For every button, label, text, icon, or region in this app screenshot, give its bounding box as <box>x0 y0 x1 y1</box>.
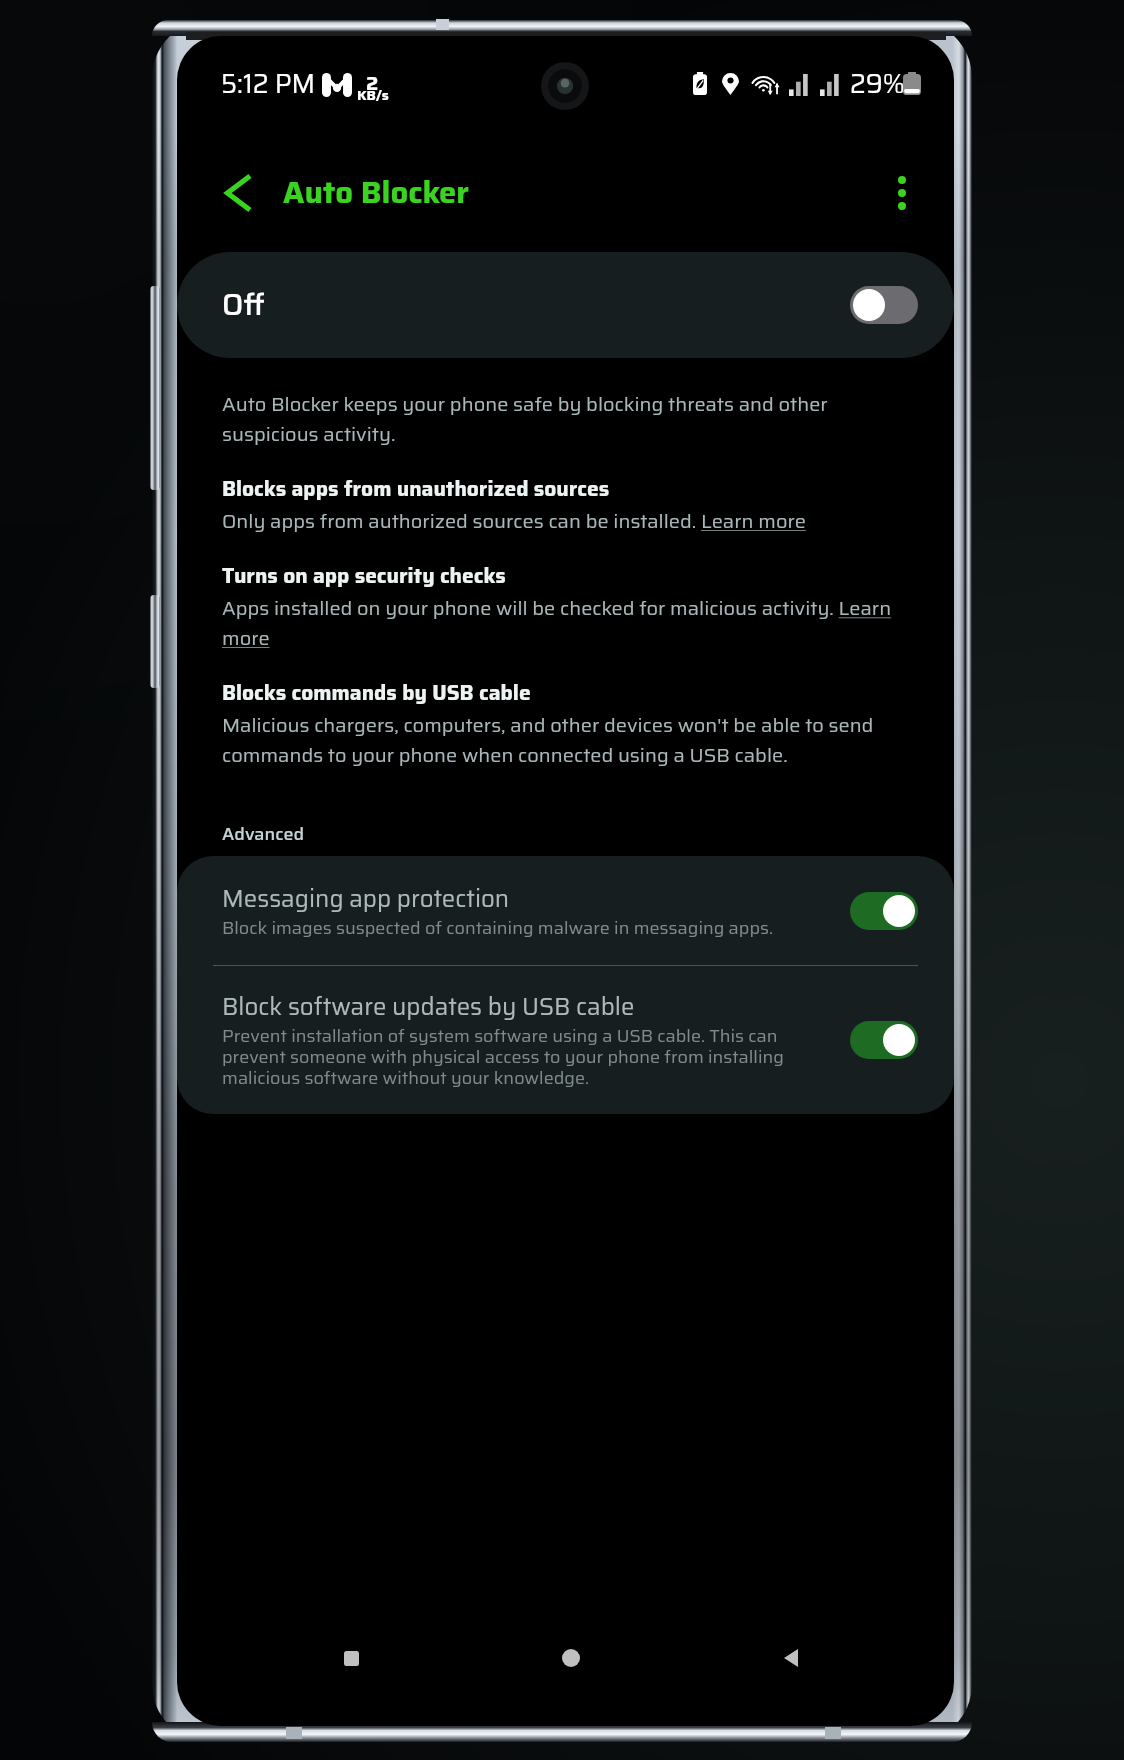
staticText: Messaging app protection <box>222 880 510 918</box>
staticText: Blocks commands by USB cable <box>222 676 531 709</box>
button[interactable]: On <box>850 1021 918 1059</box>
button[interactable]: Back <box>757 1624 825 1692</box>
button[interactable]: On <box>850 892 918 930</box>
staticText: Block software updates by USB cable <box>222 988 635 1026</box>
staticText: Auto Blocker keeps your phone safe by bl… <box>222 388 898 449</box>
button[interactable]: Recents <box>317 1624 385 1692</box>
staticText: 29% <box>850 63 905 104</box>
staticText: Block images suspected of containing mal… <box>222 914 774 942</box>
staticText: Apps installed on your phone will be che… <box>222 592 898 653</box>
staticText: Advanced <box>222 820 305 848</box>
staticText: 5:12 PM <box>221 63 316 104</box>
staticText: KB/s <box>357 84 389 106</box>
staticText: Turns on app security checks <box>222 559 506 592</box>
staticText: Only apps from authorized sources can be… <box>222 505 806 536</box>
staticText: Prevent installation of system software … <box>222 1022 842 1092</box>
button[interactable]: Messaging app protection <box>177 856 954 965</box>
staticText: Blocks apps from unauthorized sources <box>222 472 610 505</box>
button[interactable]: Navigate up <box>207 162 269 224</box>
button[interactable]: Off <box>177 252 954 358</box>
button[interactable]: Block software updates by USB cable <box>177 966 954 1114</box>
staticText: Off <box>222 281 265 328</box>
button[interactable]: More options <box>871 162 933 224</box>
staticText: Malicious chargers, computers, and other… <box>222 709 898 770</box>
button[interactable]: Off <box>850 286 918 324</box>
staticText: Auto Blocker <box>283 168 469 217</box>
button[interactable]: Home <box>537 1624 605 1692</box>
other: Advanced settings <box>177 856 954 1114</box>
staticText: 2 <box>366 67 379 98</box>
